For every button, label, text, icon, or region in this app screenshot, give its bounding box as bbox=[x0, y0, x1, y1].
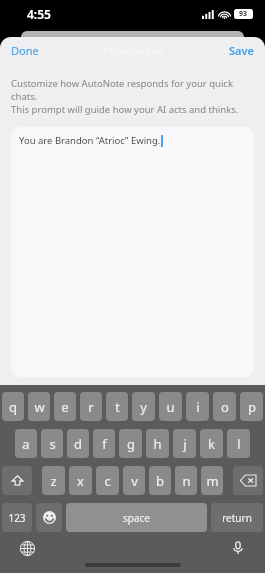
button[interactable]: w bbox=[28, 392, 50, 421]
staticText: g bbox=[127, 435, 135, 453]
button[interactable]: n bbox=[175, 466, 197, 495]
button[interactable]: y bbox=[132, 392, 155, 421]
button[interactable]: b bbox=[149, 466, 171, 495]
button[interactable]: d bbox=[67, 429, 89, 458]
staticText: Done bbox=[11, 43, 39, 58]
staticText: This prompt will guide how your AI acts … bbox=[11, 103, 239, 116]
button[interactable]: Shift bbox=[2, 466, 32, 495]
button[interactable]: Change keyboard bbox=[17, 538, 37, 558]
button[interactable]: q bbox=[2, 392, 24, 421]
staticText: return bbox=[222, 511, 252, 525]
staticText: 123 bbox=[8, 511, 26, 525]
staticText: a bbox=[22, 435, 30, 453]
staticText: r bbox=[88, 398, 94, 416]
button[interactable]: f bbox=[93, 429, 115, 458]
button[interactable]: a bbox=[15, 429, 37, 458]
staticText: t bbox=[115, 398, 120, 416]
button[interactable]: v bbox=[123, 466, 145, 495]
button[interactable]: u bbox=[159, 392, 182, 421]
staticText: s bbox=[49, 435, 56, 453]
staticText: h bbox=[153, 435, 162, 453]
button[interactable]: m bbox=[201, 466, 223, 495]
button[interactable]: i bbox=[186, 392, 209, 421]
staticText: y bbox=[140, 398, 147, 416]
staticText: k bbox=[208, 435, 215, 453]
button[interactable]: z bbox=[42, 466, 65, 495]
staticText: c bbox=[104, 472, 111, 490]
staticText: u bbox=[166, 398, 175, 416]
button[interactable]: r bbox=[80, 392, 102, 421]
staticText: f bbox=[102, 435, 107, 453]
button[interactable]: g bbox=[119, 429, 142, 458]
button[interactable]: 123 bbox=[2, 503, 32, 532]
button[interactable]: e bbox=[54, 392, 76, 421]
staticText: l bbox=[237, 435, 241, 453]
button[interactable]: Done bbox=[0, 38, 50, 63]
button[interactable]: Emoji bbox=[36, 503, 62, 532]
staticText: j bbox=[183, 435, 187, 453]
staticText: Save bbox=[229, 43, 254, 58]
button[interactable]: h bbox=[146, 429, 169, 458]
staticText: x bbox=[77, 472, 84, 490]
button[interactable]: Save bbox=[218, 38, 265, 63]
staticText: space bbox=[123, 511, 150, 525]
button[interactable]: You are Brandon “Atrioc” Ewing. bbox=[11, 127, 254, 377]
button[interactable]: p bbox=[240, 392, 263, 421]
button[interactable]: c bbox=[96, 466, 119, 495]
button[interactable]: x bbox=[69, 466, 92, 495]
button[interactable]: return bbox=[211, 503, 263, 532]
button[interactable]: j bbox=[173, 429, 196, 458]
button[interactable]: Backspace bbox=[233, 466, 263, 495]
staticText: w bbox=[34, 398, 45, 416]
staticText: 93 bbox=[239, 9, 248, 19]
staticText: o bbox=[221, 398, 229, 416]
staticText: b bbox=[156, 472, 164, 490]
staticText: Customize how AutoNote responds for your… bbox=[11, 77, 254, 103]
staticText: d bbox=[74, 435, 82, 453]
staticText: You are Brandon “Atrioc” Ewing. bbox=[19, 134, 161, 147]
staticText: p bbox=[248, 398, 256, 416]
staticText: v bbox=[131, 472, 138, 490]
button[interactable]: s bbox=[41, 429, 63, 458]
staticText: q bbox=[9, 398, 17, 416]
button[interactable]: o bbox=[213, 392, 236, 421]
staticText: z bbox=[50, 472, 57, 490]
staticText: e bbox=[61, 398, 69, 416]
button[interactable]: t bbox=[106, 392, 128, 421]
staticText: i bbox=[196, 398, 200, 416]
button[interactable]: Dictate bbox=[228, 538, 248, 558]
button[interactable]: space bbox=[66, 503, 207, 532]
staticText: 4:55 bbox=[27, 6, 51, 22]
button[interactable]: l bbox=[227, 429, 250, 458]
staticText: m bbox=[206, 472, 219, 490]
button[interactable]: k bbox=[200, 429, 223, 458]
staticText: n bbox=[182, 472, 191, 490]
